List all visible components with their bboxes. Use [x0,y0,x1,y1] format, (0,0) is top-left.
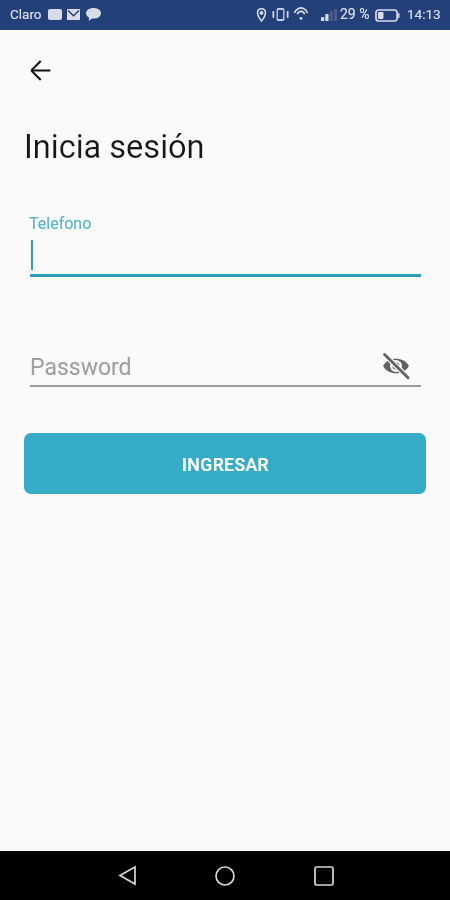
button[interactable]: INGRESAR [24,433,426,494]
staticText: Claro [10,6,42,22]
button[interactable]: Telefono [30,208,421,277]
button[interactable]: Back [78,851,176,900]
staticText: Password [30,354,132,381]
staticText: 14:13 [407,6,441,22]
button[interactable]: Home [176,851,274,900]
button[interactable]: Password [30,345,421,387]
staticText: INGRESAR [182,455,269,476]
staticText: 29 % [340,6,370,22]
button[interactable]: Recent apps [275,851,373,900]
button[interactable]: Show password [378,348,414,384]
staticText: Telefono [29,214,92,233]
staticText: Inicia sesión [24,128,205,166]
button[interactable]: Back [17,47,64,94]
